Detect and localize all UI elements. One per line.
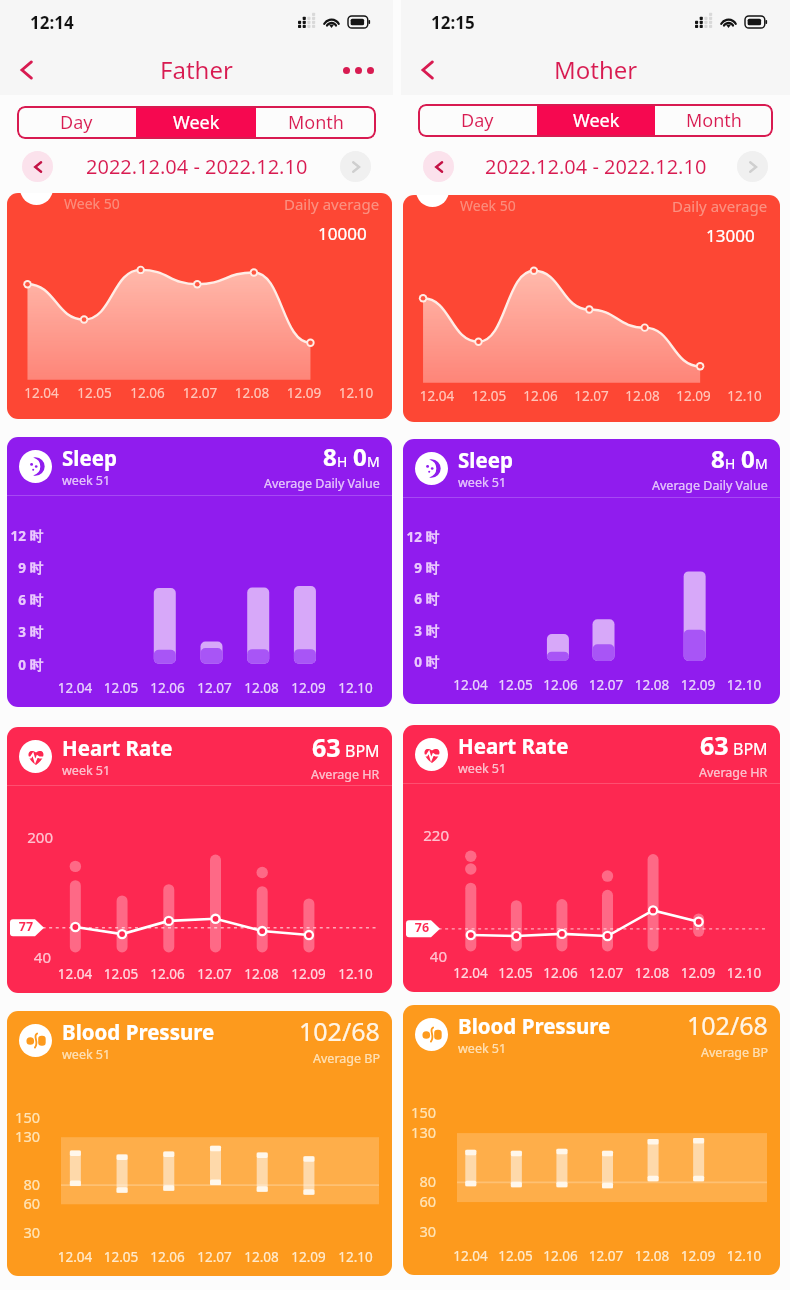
staticText: 12.05 — [493, 676, 538, 694]
staticText: 13000 — [706, 224, 755, 247]
button[interactable]: Next week — [340, 151, 371, 182]
staticText: 150 — [403, 1102, 436, 1122]
button[interactable]: Week 50 — [7, 193, 392, 419]
staticText: 12.05 — [98, 679, 144, 697]
staticText: 12.06 — [144, 679, 191, 697]
staticText: 0 时 — [403, 653, 439, 671]
button[interactable]: Week — [136, 106, 256, 139]
button[interactable]: More options — [335, 52, 381, 88]
button[interactable]: Blood Pressure — [403, 1005, 780, 1275]
staticText: Month — [686, 108, 742, 133]
staticText: 12.10 — [332, 1248, 379, 1266]
staticText: 12.05 — [493, 964, 538, 982]
staticText: 30 — [7, 1222, 40, 1242]
button[interactable]: Blood Pressure — [7, 1011, 392, 1276]
staticText: Month — [288, 110, 344, 135]
staticText: 0 — [741, 442, 755, 475]
staticText: 12.10 — [721, 964, 767, 982]
staticText: 12.06 — [515, 387, 566, 405]
staticText: 12.07 — [174, 384, 226, 402]
staticText: 12.06 — [538, 964, 583, 982]
staticText: Daily average — [284, 194, 380, 214]
button[interactable]: Previous week — [22, 151, 53, 182]
button[interactable]: Back — [9, 52, 45, 88]
staticText: week 51 — [458, 760, 507, 777]
staticText: BPM — [345, 740, 380, 762]
staticText: Blood Pressure — [458, 1012, 611, 1040]
staticText: 12.07 — [191, 1248, 238, 1266]
button[interactable]: Sleep — [7, 437, 392, 707]
staticText: 200 — [7, 827, 53, 847]
staticText: Sleep — [62, 444, 117, 472]
staticText: 40 — [403, 946, 447, 966]
staticText: 220 — [403, 825, 449, 845]
staticText: Heart Rate — [458, 732, 569, 760]
staticText: 12 时 — [7, 527, 43, 545]
staticText: 12.05 — [493, 1247, 538, 1265]
staticText: 12.09 — [675, 964, 721, 982]
staticText: 12.04 — [448, 1247, 493, 1265]
staticText: 12.09 — [285, 965, 332, 983]
staticText: 9 时 — [403, 559, 439, 577]
staticText: 12.07 — [583, 964, 629, 982]
staticText: 12.07 — [566, 387, 617, 405]
staticText: 12.08 — [629, 1247, 675, 1265]
button[interactable]: Heart Rate — [7, 727, 392, 993]
button[interactable]: Month — [655, 104, 773, 137]
staticText: 12.08 — [629, 964, 675, 982]
staticText: Father — [160, 53, 233, 86]
staticText: Average Daily Value — [264, 475, 380, 492]
staticText: 2022.12.04 - 2022.12.10 — [485, 153, 707, 180]
staticText: 60 — [7, 1193, 40, 1213]
button[interactable]: Day — [17, 106, 136, 139]
staticText: 12.06 — [144, 1248, 191, 1266]
staticText: BPM — [733, 738, 768, 760]
staticText: 130 — [403, 1122, 436, 1142]
staticText: Day — [461, 108, 494, 133]
staticText: Average Daily Value — [652, 477, 768, 494]
button[interactable]: Week — [537, 104, 655, 137]
staticText: 12.04 — [52, 679, 98, 697]
staticText: Average BP — [701, 1044, 768, 1061]
staticText: 12.05 — [68, 384, 121, 402]
staticText: 130 — [7, 1126, 40, 1146]
staticText: 10000 — [318, 222, 367, 245]
staticText: 6 时 — [403, 590, 439, 608]
button[interactable]: Heart Rate — [403, 725, 780, 992]
button[interactable]: Sleep — [403, 439, 780, 704]
staticText: 12.07 — [583, 1247, 629, 1265]
staticText: 102/68 — [299, 1014, 380, 1048]
staticText: Mother — [554, 53, 638, 86]
staticText: 9 时 — [7, 559, 43, 577]
staticText: Week 50 — [460, 196, 516, 215]
staticText: Average HR — [311, 766, 380, 783]
staticText: Average BP — [313, 1050, 380, 1067]
button[interactable]: Previous week — [423, 151, 454, 182]
staticText: Blood Pressure — [62, 1018, 215, 1046]
staticText: 12.09 — [278, 384, 330, 402]
staticText: 30 — [403, 1221, 436, 1241]
staticText: 12.09 — [675, 676, 721, 694]
staticText: 12.10 — [721, 676, 767, 694]
staticText: 12.10 — [332, 679, 379, 697]
staticText: week 51 — [458, 1040, 507, 1057]
staticText: M — [367, 452, 380, 471]
staticText: 80 — [7, 1174, 40, 1194]
button[interactable]: Next week — [737, 151, 768, 182]
staticText: 12.09 — [668, 387, 719, 405]
staticText: 60 — [403, 1191, 436, 1211]
staticText: 12.10 — [719, 387, 770, 405]
staticText: 12.07 — [191, 965, 238, 983]
staticText: 40 — [7, 947, 51, 967]
button[interactable]: Back — [410, 52, 446, 88]
staticText: 12.06 — [121, 384, 174, 402]
staticText: week 51 — [62, 762, 111, 779]
staticText: 8 — [323, 440, 337, 473]
staticText: 12.04 — [15, 384, 68, 402]
staticText: H — [725, 454, 736, 473]
button[interactable]: Day — [418, 104, 537, 137]
staticText: 12.09 — [285, 1248, 332, 1266]
button[interactable]: Month — [256, 106, 376, 139]
staticText: 2022.12.04 - 2022.12.10 — [86, 153, 308, 180]
button[interactable]: Week 50 — [403, 195, 780, 422]
